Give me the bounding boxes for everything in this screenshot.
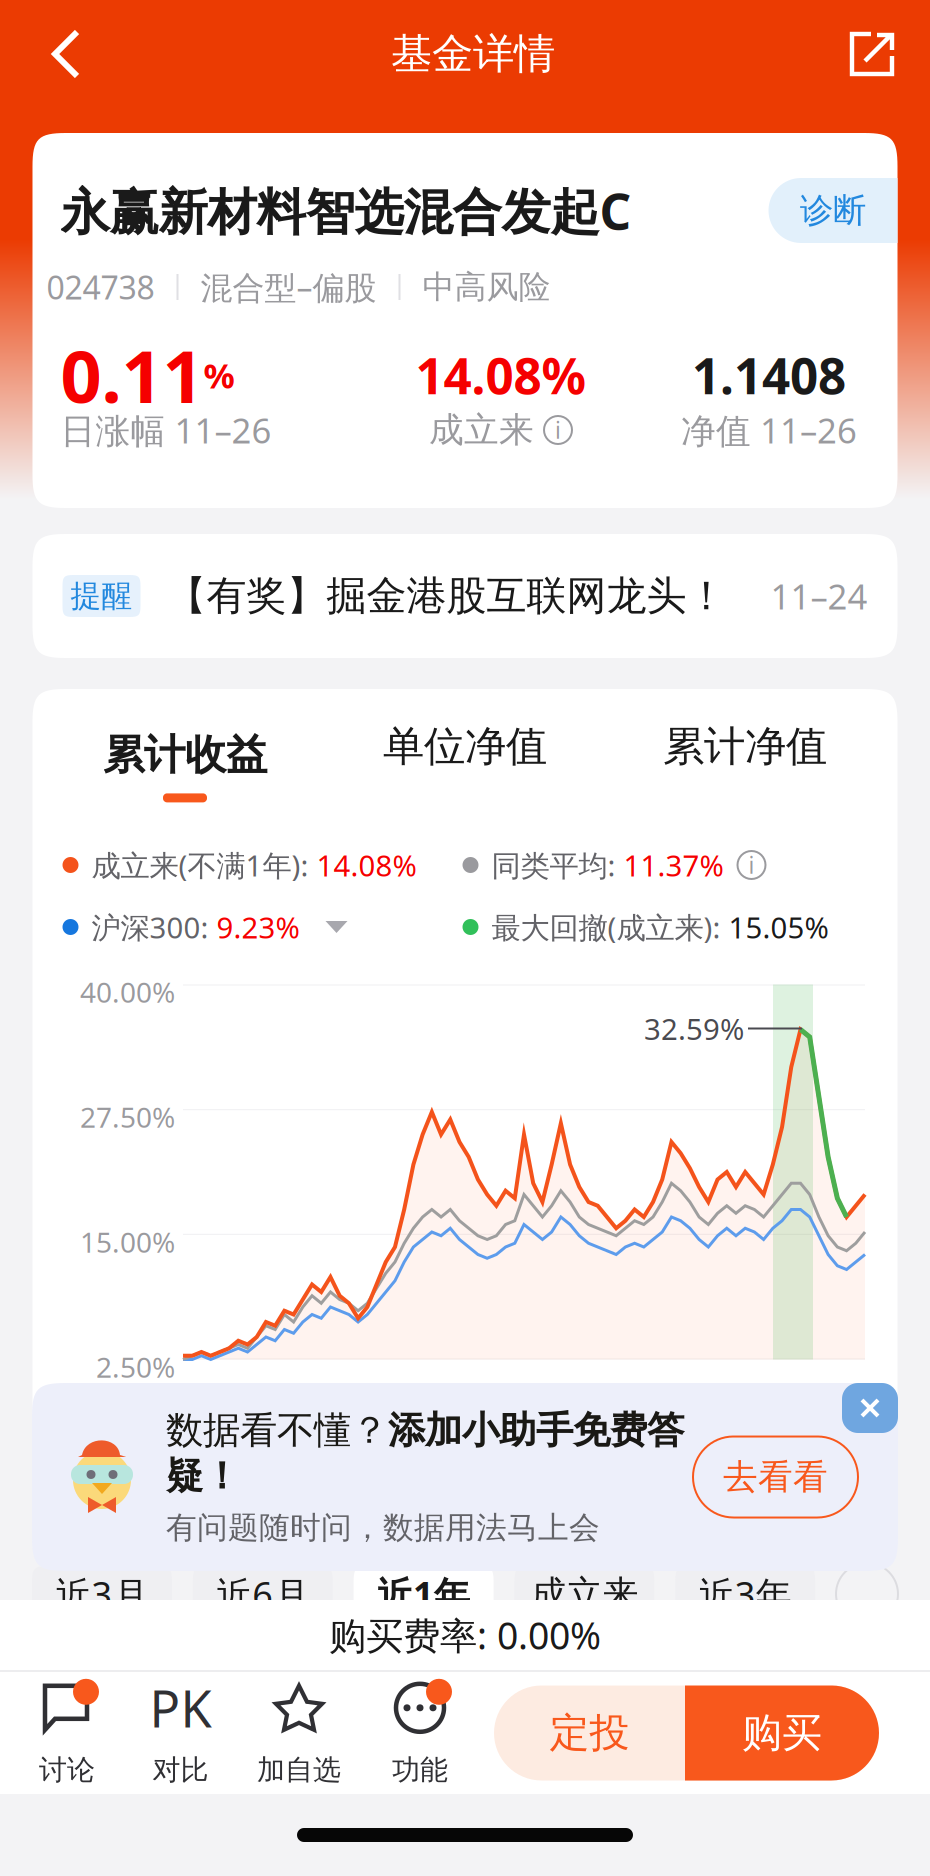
button[interactable]: 加自选 [239, 1674, 359, 1792]
staticText: 9.23% [216, 907, 299, 946]
button[interactable]: PK [122, 1674, 239, 1792]
staticText: 11–24 [770, 573, 867, 619]
staticText: i [748, 850, 754, 880]
staticText: 同类平均: [491, 845, 623, 884]
staticText: 024738 [46, 266, 154, 308]
button[interactable]: Close [842, 1383, 898, 1433]
staticText: 净值 11–26 [681, 407, 857, 453]
button[interactable]: 累计收益 [45, 721, 325, 811]
staticText: 对比 [152, 1753, 208, 1787]
staticText: 成立来 [530, 1572, 638, 1616]
staticText: 中高风险 [422, 267, 550, 307]
staticText: 27.50% [80, 1098, 175, 1136]
staticText: 14.08% [316, 845, 416, 884]
button[interactable]: 提醒 [32, 534, 897, 658]
staticText: 诊断 [800, 190, 866, 231]
staticText: 近3月 [55, 1570, 148, 1618]
button[interactable]: 购买 [685, 1685, 879, 1780]
staticText: 日涨幅 11–26 [60, 407, 271, 453]
staticText: 最大回撤(成立来): [491, 907, 728, 946]
button[interactable]: 去看看 [693, 1436, 858, 1517]
button[interactable]: 成立来 [514, 1566, 654, 1622]
staticText: 14.08% [415, 342, 585, 408]
staticText: 功能 [392, 1753, 448, 1787]
staticText: 数据看不懂？添加小助手免费答疑！ [166, 1407, 684, 1499]
button[interactable]: More ranges [836, 1563, 898, 1625]
staticText: i [555, 415, 561, 445]
button[interactable]: 近1年 [354, 1566, 494, 1622]
staticText: 永赢新材料智选混合发起C [60, 178, 631, 243]
staticText: 近6月 [216, 1570, 309, 1618]
staticText: 【有奖】掘金港股互联网龙头！ [166, 571, 726, 620]
staticText: 基金详情 [391, 29, 555, 79]
staticText: 购买 [742, 1708, 822, 1757]
button[interactable]: 近3年 [675, 1566, 815, 1622]
staticText: 2.50% [96, 1348, 175, 1386]
staticText: 定投 [549, 1708, 629, 1757]
staticText: 累计收益 [103, 730, 267, 780]
staticText: 成立来 [429, 409, 534, 451]
button[interactable]: Share [814, 2, 930, 106]
staticText: 1.1408 [692, 342, 846, 408]
button[interactable]: 近6月 [193, 1566, 333, 1622]
button[interactable]: Back [0, 2, 132, 106]
staticText: 15.05% [728, 907, 828, 946]
staticText: % [203, 352, 234, 398]
button[interactable]: 诊断 [768, 178, 897, 243]
staticText: 0.11 [60, 327, 203, 423]
button[interactable]: 功能 [359, 1674, 481, 1792]
button[interactable]: 定投 [494, 1685, 685, 1780]
staticText: 购买费率: 0.00% [329, 1610, 601, 1660]
button[interactable]: 讨论 [12, 1674, 122, 1792]
staticText: 32.59% [644, 1009, 744, 1048]
staticText: 加自选 [257, 1753, 341, 1787]
staticText: 提醒 [70, 577, 132, 615]
staticText: 近1年 [377, 1570, 470, 1618]
staticText: 40.00% [80, 973, 175, 1011]
staticText: 成立来(不满1年): [91, 845, 316, 884]
button[interactable]: 近3月 [32, 1566, 172, 1622]
staticText: 有问题随时问，数据用法马上会 [166, 1509, 600, 1547]
staticText: 去看看 [723, 1456, 828, 1498]
staticText: 单位净值 [383, 721, 547, 772]
button[interactable]: 累计净值 [605, 721, 885, 811]
staticText: 累计净值 [663, 721, 827, 772]
staticText: 15.00% [80, 1223, 175, 1261]
staticText: PK [149, 1674, 211, 1741]
staticText: 讨论 [39, 1753, 95, 1787]
staticText: 混合型–偏股 [200, 266, 376, 308]
staticText: 11.37% [623, 845, 723, 884]
staticText: 近3年 [699, 1570, 792, 1618]
staticText: 沪深300: [91, 907, 216, 946]
button[interactable]: 单位净值 [325, 721, 605, 811]
